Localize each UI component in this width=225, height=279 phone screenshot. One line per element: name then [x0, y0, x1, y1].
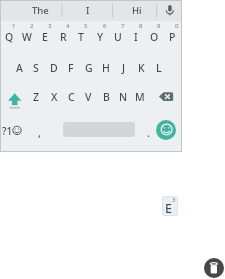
button[interactable]	[4, 88, 26, 110]
staticText: G	[85, 61, 93, 75]
staticText: L	[156, 61, 162, 75]
button[interactable]: S	[26, 59, 46, 77]
staticText: Y	[97, 30, 104, 44]
button[interactable]: H	[96, 59, 116, 77]
staticText: K	[138, 61, 145, 75]
button[interactable]: L	[149, 59, 169, 77]
button[interactable]: Z	[26, 88, 46, 106]
staticText: I	[86, 4, 90, 17]
staticText: 1	[12, 22, 16, 30]
staticText: T	[78, 30, 84, 44]
button[interactable]: V	[78, 88, 98, 106]
staticText: E	[165, 200, 172, 217]
button[interactable]	[62, 1, 112, 21]
staticText: D	[50, 61, 58, 75]
button[interactable]: R	[53, 28, 73, 46]
staticText: U	[114, 30, 122, 44]
button[interactable]: X	[44, 88, 64, 106]
button[interactable]: G	[79, 59, 99, 77]
staticText: B	[103, 90, 110, 104]
staticText: 5	[84, 22, 88, 30]
staticText: 6	[103, 22, 107, 30]
button[interactable]: I	[126, 28, 146, 46]
staticText: I	[134, 30, 138, 44]
staticText: 3	[48, 22, 52, 30]
button[interactable]: T	[71, 28, 91, 46]
button[interactable]: J	[114, 59, 134, 77]
button[interactable]: N	[113, 88, 133, 106]
staticText: A	[16, 61, 23, 75]
staticText: S	[33, 61, 39, 75]
button[interactable]	[155, 88, 177, 110]
button[interactable]: Q	[0, 28, 19, 46]
staticText: Q	[5, 30, 14, 44]
button[interactable]: W	[17, 28, 37, 46]
staticText: J	[122, 61, 126, 75]
button[interactable]	[156, 120, 176, 140]
button[interactable]: U	[108, 28, 128, 46]
staticText: M	[135, 90, 145, 104]
staticText: E	[42, 30, 48, 44]
button[interactable]: ?1	[0, 122, 17, 140]
staticText: V	[85, 90, 92, 104]
staticText: W	[22, 30, 32, 44]
staticText: 8	[139, 22, 143, 30]
button[interactable]: .	[138, 123, 158, 141]
button[interactable]: E	[35, 28, 55, 46]
button[interactable]: ,	[30, 123, 50, 141]
staticText: Z	[33, 90, 40, 104]
button[interactable]: D	[44, 59, 64, 77]
button[interactable]	[157, 1, 181, 21]
button[interactable]: Y	[90, 28, 110, 46]
staticText: F	[68, 61, 74, 75]
staticText: H	[102, 61, 110, 75]
staticText: 9	[157, 22, 161, 30]
staticText: 7	[121, 22, 125, 30]
button[interactable]	[204, 258, 224, 278]
button[interactable]: O	[144, 28, 164, 46]
staticText: 2	[30, 22, 34, 30]
button[interactable]: K	[131, 59, 151, 77]
button[interactable]: B	[96, 88, 116, 106]
staticText: O	[150, 30, 159, 44]
button[interactable]: P	[162, 28, 182, 46]
staticText: P	[169, 30, 176, 44]
button[interactable]: A	[9, 59, 29, 77]
staticText: ?1	[2, 124, 13, 138]
button[interactable]: M	[130, 88, 150, 106]
staticText: .	[147, 125, 150, 140]
staticText: R	[60, 30, 67, 44]
staticText: X	[51, 90, 58, 104]
staticText: 4	[66, 22, 70, 30]
staticText: ,	[38, 125, 42, 140]
button[interactable]	[1, 1, 62, 21]
staticText: Hi	[132, 4, 142, 17]
button[interactable]	[113, 1, 157, 21]
button[interactable]: C	[61, 88, 81, 106]
staticText: 3	[172, 196, 176, 204]
staticText: N	[119, 90, 128, 104]
staticText: The	[32, 4, 49, 17]
staticText: C	[68, 90, 75, 104]
button[interactable]: F	[61, 59, 81, 77]
staticText: 0	[175, 22, 179, 30]
